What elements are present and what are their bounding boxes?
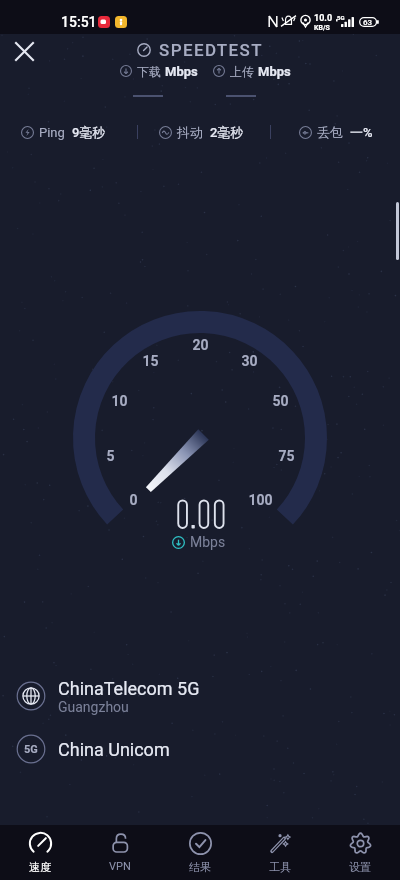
staticText: 100 [248,492,273,508]
button[interactable]: 设置 [320,825,400,880]
button[interactable]: VPN [80,825,160,880]
staticText: Mbps [190,534,226,550]
staticText: VPN [109,860,131,873]
button[interactable]: 工具 [240,825,320,880]
staticText: ChinaTelecom 5G [58,678,200,699]
staticText: 10 [111,393,128,409]
staticText: 0 [129,492,138,508]
button[interactable]: 结果 [160,825,240,880]
staticText: 上传 [230,64,254,79]
staticText: SPEEDTEST [159,40,263,60]
staticText: 15:51 [61,14,97,30]
staticText: 15 [142,353,159,369]
button[interactable]: Close [9,36,39,66]
staticText: 5 [106,448,115,464]
staticText: 设置 [349,860,371,874]
staticText: 20 [192,337,209,353]
button[interactable]: 速度 [0,825,80,880]
staticText: 30 [241,353,258,369]
button[interactable]: 5G [0,726,400,772]
staticText: KB/S [314,24,330,32]
staticText: Mbps [165,64,198,79]
staticText: 9毫秒 [72,124,106,140]
staticText: 丢包 [317,124,343,140]
staticText: 10.0 [314,13,333,24]
staticText: Ping [39,125,65,140]
staticText: 抖动 [177,124,203,140]
staticText: 工具 [269,860,291,874]
staticText: 结果 [189,860,211,874]
staticText: Mbps [258,64,291,79]
staticText: 5G [24,743,38,756]
staticText: 速度 [29,860,51,874]
staticText: 75 [278,448,295,464]
staticText: 一% [350,124,373,140]
staticText: China Unicom [58,739,170,760]
staticText: 下载 [137,64,161,79]
staticText: 5G [337,14,345,21]
staticText: 2毫秒 [210,124,244,140]
staticText: Guangzhou [58,699,129,715]
staticText: 50 [272,393,289,409]
staticText: 63 [363,18,373,27]
button[interactable]: ChinaTelecom 5G [0,669,400,723]
